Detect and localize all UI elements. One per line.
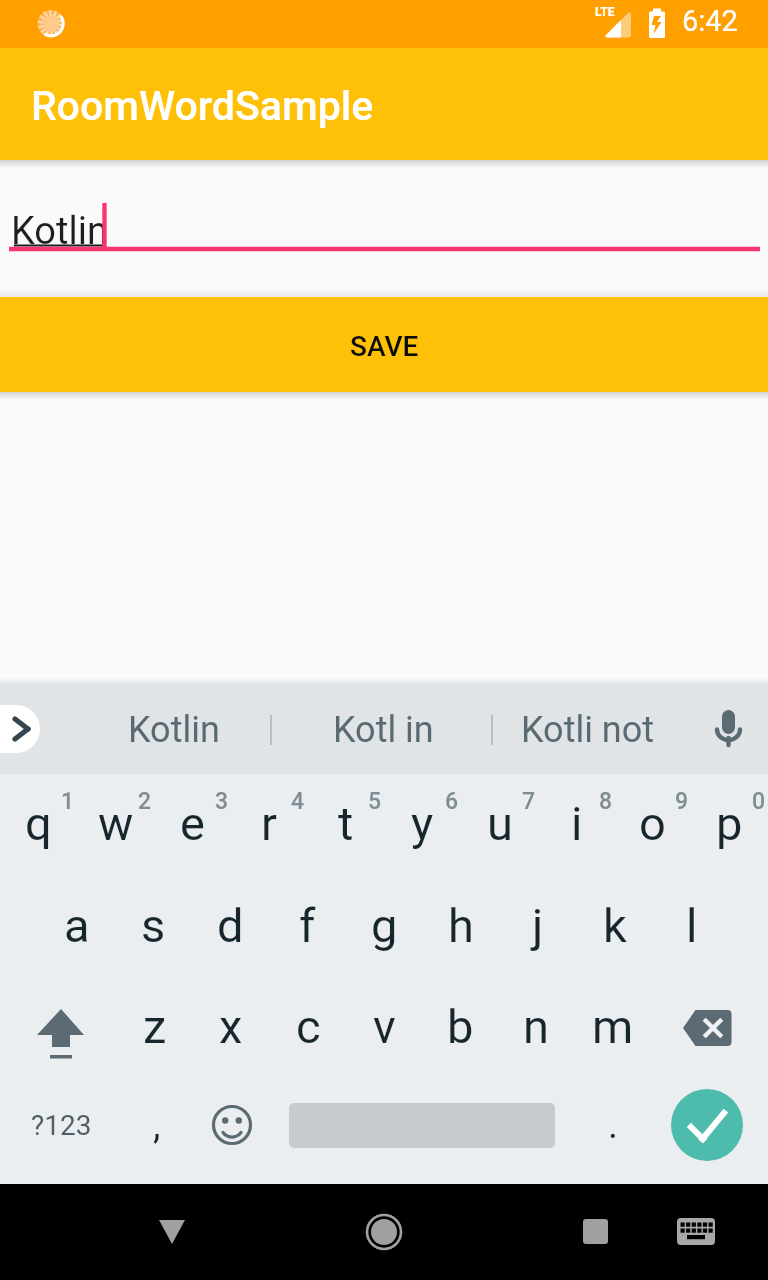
staticText: 3 xyxy=(215,788,229,815)
button[interactable]: f xyxy=(269,884,346,980)
button[interactable]: Kotl in xyxy=(302,694,464,766)
staticText: s xyxy=(141,898,166,953)
staticText: Kotli not xyxy=(521,709,655,751)
button[interactable]: s xyxy=(115,884,192,980)
staticText: w xyxy=(98,796,134,851)
staticText: r xyxy=(261,796,277,851)
staticText: 5 xyxy=(368,788,382,815)
button[interactable]: j xyxy=(499,884,576,980)
staticText: 0 xyxy=(752,788,766,815)
staticText: 9 xyxy=(675,788,689,815)
staticText: d xyxy=(217,898,244,953)
button[interactable]: Home xyxy=(354,1202,414,1262)
staticText: 4 xyxy=(291,788,305,815)
staticText: a xyxy=(64,898,90,953)
button[interactable]: k xyxy=(576,884,653,980)
staticText: t xyxy=(338,796,354,851)
staticText: o xyxy=(639,796,666,851)
staticText: h xyxy=(448,898,474,953)
button[interactable]: , xyxy=(125,1078,189,1172)
staticText: m xyxy=(592,999,634,1054)
button[interactable]: Voice input xyxy=(699,700,759,760)
button[interactable]: Switch keyboard xyxy=(666,1202,726,1262)
button[interactable]: i xyxy=(538,782,615,878)
button[interactable]: t xyxy=(307,782,384,878)
button[interactable]: q xyxy=(0,782,77,878)
button[interactable]: v xyxy=(346,985,422,1081)
button[interactable]: g xyxy=(346,884,423,980)
staticText: f xyxy=(299,898,316,953)
button[interactable]: u xyxy=(461,782,538,878)
staticText: k xyxy=(603,898,627,953)
staticText: 1 xyxy=(61,788,75,815)
staticText: c xyxy=(296,999,321,1054)
staticText: 6:42 xyxy=(682,4,738,38)
button[interactable]: p xyxy=(691,782,768,878)
staticText: LTE xyxy=(595,5,615,19)
button[interactable]: Kotlin xyxy=(98,694,249,766)
staticText: n xyxy=(523,999,549,1054)
staticText: RoomWordSample xyxy=(31,82,374,130)
staticText: g xyxy=(371,898,398,953)
staticText: , xyxy=(153,1103,161,1148)
staticText: SAVE xyxy=(350,330,419,363)
button[interactable]: o xyxy=(614,782,691,878)
button[interactable]: SAVE xyxy=(0,297,768,392)
button[interactable]: r xyxy=(230,782,307,878)
staticText: Kotlin xyxy=(11,209,108,254)
staticText: l xyxy=(686,898,698,953)
staticText: b xyxy=(447,999,474,1054)
staticText: i xyxy=(571,796,583,851)
button[interactable]: h xyxy=(422,884,499,980)
button[interactable]: b xyxy=(422,985,498,1081)
button[interactable]: e xyxy=(154,782,231,878)
button[interactable]: y xyxy=(384,782,461,878)
staticText: j xyxy=(532,898,544,953)
button[interactable]: Back xyxy=(142,1202,202,1262)
staticText: 2 xyxy=(138,788,152,815)
staticText: 8 xyxy=(599,788,613,815)
staticText: Kotl in xyxy=(333,709,434,751)
button[interactable]: Shift xyxy=(5,978,117,1074)
button[interactable]: Kotli not xyxy=(490,694,686,766)
button[interactable]: l xyxy=(653,884,730,980)
button[interactable]: x xyxy=(193,985,269,1081)
staticText: . xyxy=(608,1103,619,1148)
button[interactable]: Expand suggestions xyxy=(0,705,40,753)
staticText: x xyxy=(219,999,243,1054)
staticText: u xyxy=(487,796,513,851)
button[interactable]: Space xyxy=(275,1078,569,1172)
button[interactable]: m xyxy=(575,985,651,1081)
staticText: v xyxy=(373,999,396,1054)
staticText: 7 xyxy=(522,788,536,815)
button[interactable]: w xyxy=(77,782,154,878)
button[interactable]: a xyxy=(38,884,115,980)
staticText: y xyxy=(411,796,434,851)
staticText: 6 xyxy=(445,788,459,815)
staticText: q xyxy=(25,796,52,851)
button[interactable]: z xyxy=(117,985,193,1081)
staticText: z xyxy=(143,999,167,1054)
button[interactable]: d xyxy=(192,884,269,980)
button[interactable]: Kotlin xyxy=(0,160,768,297)
button[interactable]: Backspace xyxy=(653,978,765,1074)
staticText: ?123 xyxy=(31,1109,92,1142)
button[interactable]: Emoji xyxy=(202,1078,262,1172)
button[interactable]: . xyxy=(583,1078,643,1172)
button[interactable]: n xyxy=(498,985,574,1081)
staticText: p xyxy=(716,796,743,851)
button[interactable]: ?123 xyxy=(10,1078,112,1172)
staticText: Kotlin xyxy=(128,709,220,751)
button[interactable]: Recents xyxy=(565,1202,625,1262)
button[interactable]: c xyxy=(270,985,346,1081)
button[interactable]: Done xyxy=(655,1078,760,1172)
staticText: e xyxy=(180,796,205,851)
